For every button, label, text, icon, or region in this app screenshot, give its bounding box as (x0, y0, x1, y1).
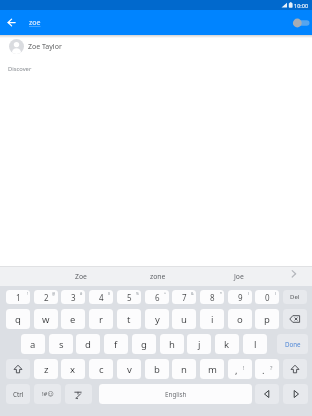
staticText: q (15, 313, 21, 326)
button[interactable]: 3 (61, 290, 85, 304)
button[interactable]: e (61, 309, 85, 329)
button[interactable]: English (99, 384, 252, 404)
staticText: Zoe (75, 272, 87, 281)
button[interactable]: Done (277, 334, 308, 354)
button[interactable] (288, 16, 312, 30)
button[interactable]: z (34, 359, 58, 379)
staticText: a (30, 338, 36, 351)
button[interactable]: Ctrl (6, 384, 30, 404)
button[interactable]: . (255, 359, 279, 379)
staticText: l (254, 338, 257, 351)
staticText: i (211, 313, 214, 326)
staticText: English (165, 390, 187, 399)
button[interactable]: n (172, 359, 196, 379)
staticText: @ (52, 291, 56, 296)
staticText: k (224, 338, 230, 351)
button[interactable] (65, 384, 92, 404)
staticText: t (127, 313, 131, 326)
button[interactable] (283, 359, 307, 379)
staticText: Done (285, 340, 301, 348)
button[interactable]: 6 (145, 290, 169, 304)
button[interactable]: c (89, 359, 113, 379)
button[interactable]: v (117, 359, 141, 379)
button[interactable]: 0 (255, 290, 279, 304)
button[interactable] (283, 309, 307, 329)
staticText: zone (150, 272, 166, 281)
staticText: 0 (265, 292, 270, 303)
staticText: ) (275, 291, 277, 296)
staticText: e (70, 313, 76, 326)
button[interactable]: g (132, 334, 156, 354)
staticText: n (181, 363, 187, 376)
staticText: 7 (182, 292, 187, 303)
button[interactable]: d (76, 334, 100, 354)
button[interactable] (4, 15, 20, 31)
staticText: # (80, 291, 83, 296)
button[interactable]: q (6, 309, 30, 329)
button[interactable]: t (117, 309, 141, 329)
button[interactable]: a (21, 334, 45, 354)
button[interactable] (255, 384, 279, 404)
button[interactable]: p (255, 309, 279, 329)
staticText: Discover (8, 65, 32, 73)
staticText: f (114, 338, 118, 351)
button[interactable] (283, 384, 308, 404)
staticText: x (70, 363, 76, 376)
button[interactable] (6, 359, 30, 379)
staticText: Ctrl (13, 390, 24, 399)
button[interactable]: 7 (172, 290, 196, 304)
staticText: 5 (127, 292, 132, 303)
staticText: Del (290, 293, 300, 301)
button[interactable]: r (89, 309, 113, 329)
staticText: r (99, 313, 103, 326)
staticText: m (208, 363, 217, 376)
staticText: h (169, 338, 175, 351)
button[interactable]: i (200, 309, 224, 329)
button[interactable]: Del (283, 290, 307, 304)
button[interactable]: !#☺ (34, 384, 61, 404)
button[interactable]: b (145, 359, 169, 379)
staticText: . (262, 364, 265, 377)
button[interactable]: h (160, 334, 184, 354)
button[interactable]: x (61, 359, 85, 379)
button[interactable]: Zoe (56, 266, 106, 286)
button[interactable]: 2 (34, 290, 58, 304)
button[interactable]: 1 (6, 290, 30, 304)
staticText: u (181, 313, 187, 326)
button[interactable]: 4 (89, 290, 113, 304)
button[interactable]: w (34, 309, 58, 329)
staticText: z (44, 363, 49, 376)
staticText: g (141, 338, 147, 351)
staticText: ? (270, 364, 273, 371)
button[interactable]: m (200, 359, 224, 379)
button[interactable]: y (145, 309, 169, 329)
staticText: 8 (210, 292, 215, 303)
button[interactable]: k (215, 334, 239, 354)
button[interactable]: Joe (214, 266, 264, 286)
button[interactable]: 5 (117, 290, 141, 304)
button[interactable]: , (228, 359, 252, 379)
button[interactable]: l (243, 334, 267, 354)
staticText: zoe (29, 18, 41, 28)
staticText: * (220, 291, 222, 296)
button[interactable]: u (172, 309, 196, 329)
button[interactable]: Zoe Taylor (0, 37, 312, 56)
staticText: & (191, 291, 194, 296)
button[interactable]: j (187, 334, 211, 354)
staticText: ! (27, 291, 28, 296)
button[interactable]: zone (133, 266, 183, 286)
staticText: 10:00 (294, 2, 309, 9)
staticText: 2 (44, 292, 49, 303)
button[interactable]: s (49, 334, 73, 354)
button[interactable]: 8 (200, 290, 224, 304)
staticText: b (154, 363, 160, 376)
staticText: y (155, 313, 160, 326)
staticText: v (127, 363, 132, 376)
staticText: $ (108, 291, 111, 296)
staticText: ^ (164, 291, 167, 296)
button[interactable]: o (228, 309, 252, 329)
staticText: !#☺ (42, 390, 54, 398)
button[interactable]: 9 (228, 290, 252, 304)
staticText: % (136, 291, 139, 296)
button[interactable]: f (104, 334, 128, 354)
